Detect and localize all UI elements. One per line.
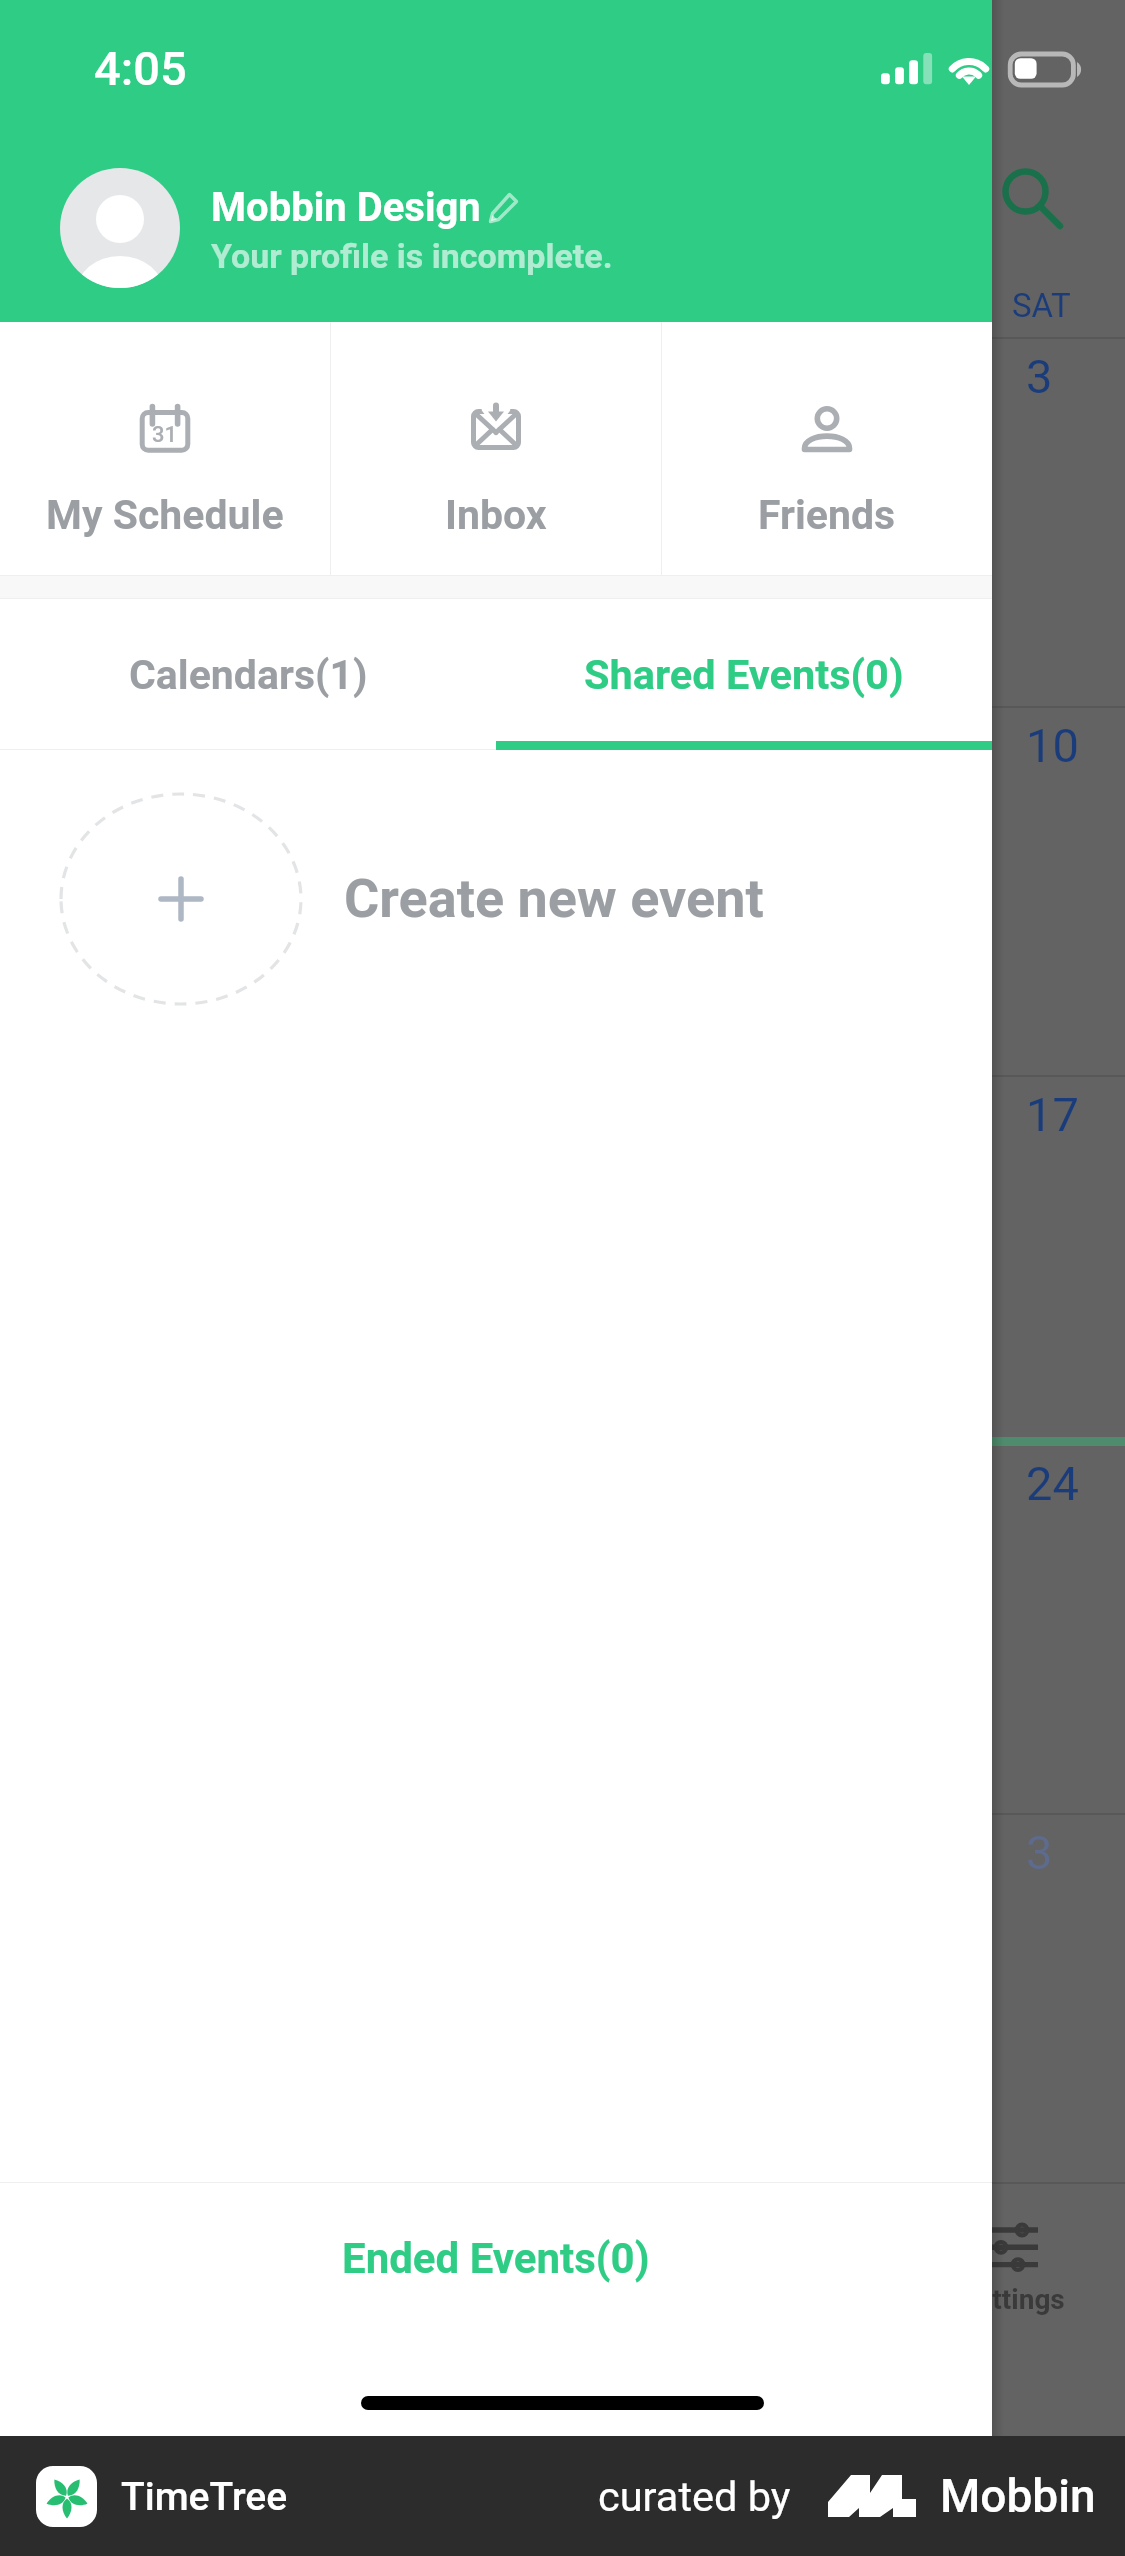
staticText: 4:05 [94, 41, 187, 96]
staticText: Your profile is incomplete. [211, 236, 613, 276]
button[interactable]: Shared Events(0) [496, 599, 992, 750]
button[interactable]: Calendars(1) [0, 599, 496, 750]
staticText: Ended Events(0) [342, 2234, 650, 2283]
staticText: 3 [1026, 1825, 1053, 1880]
staticText: Shared Events(0) [584, 650, 904, 699]
button[interactable]: Search [1002, 168, 1066, 232]
staticText: 24 [1026, 1456, 1079, 1511]
staticText: 17 [1026, 1087, 1079, 1142]
button[interactable]: Edit profile [488, 192, 519, 223]
staticText: TimeTree [121, 2474, 288, 2520]
button[interactable]: Friends [661, 322, 992, 575]
button[interactable]: 31 [0, 322, 330, 575]
staticText: 10 [1026, 718, 1079, 773]
button[interactable]: Create new event [0, 750, 992, 1040]
staticText: Inbox [445, 491, 547, 539]
staticText: 31 [152, 422, 178, 448]
staticText: Create new event [344, 867, 764, 930]
staticText: Mobbin Design [211, 184, 481, 231]
staticText: SAT [1012, 286, 1071, 325]
button[interactable]: Settings [960, 2222, 1050, 2274]
button[interactable]: Ended Events(0) [0, 2183, 992, 2334]
staticText: 3 [1026, 349, 1053, 404]
button[interactable]: Inbox [330, 322, 661, 575]
staticText: My Schedule [46, 491, 284, 539]
staticText: Settings [960, 2283, 1065, 2316]
staticText: curated by [598, 2472, 791, 2521]
staticText: Mobbin [940, 2469, 1096, 2523]
staticText: Calendars(1) [129, 651, 368, 699]
staticText: Friends [758, 491, 896, 539]
button[interactable] [0, 150, 992, 310]
